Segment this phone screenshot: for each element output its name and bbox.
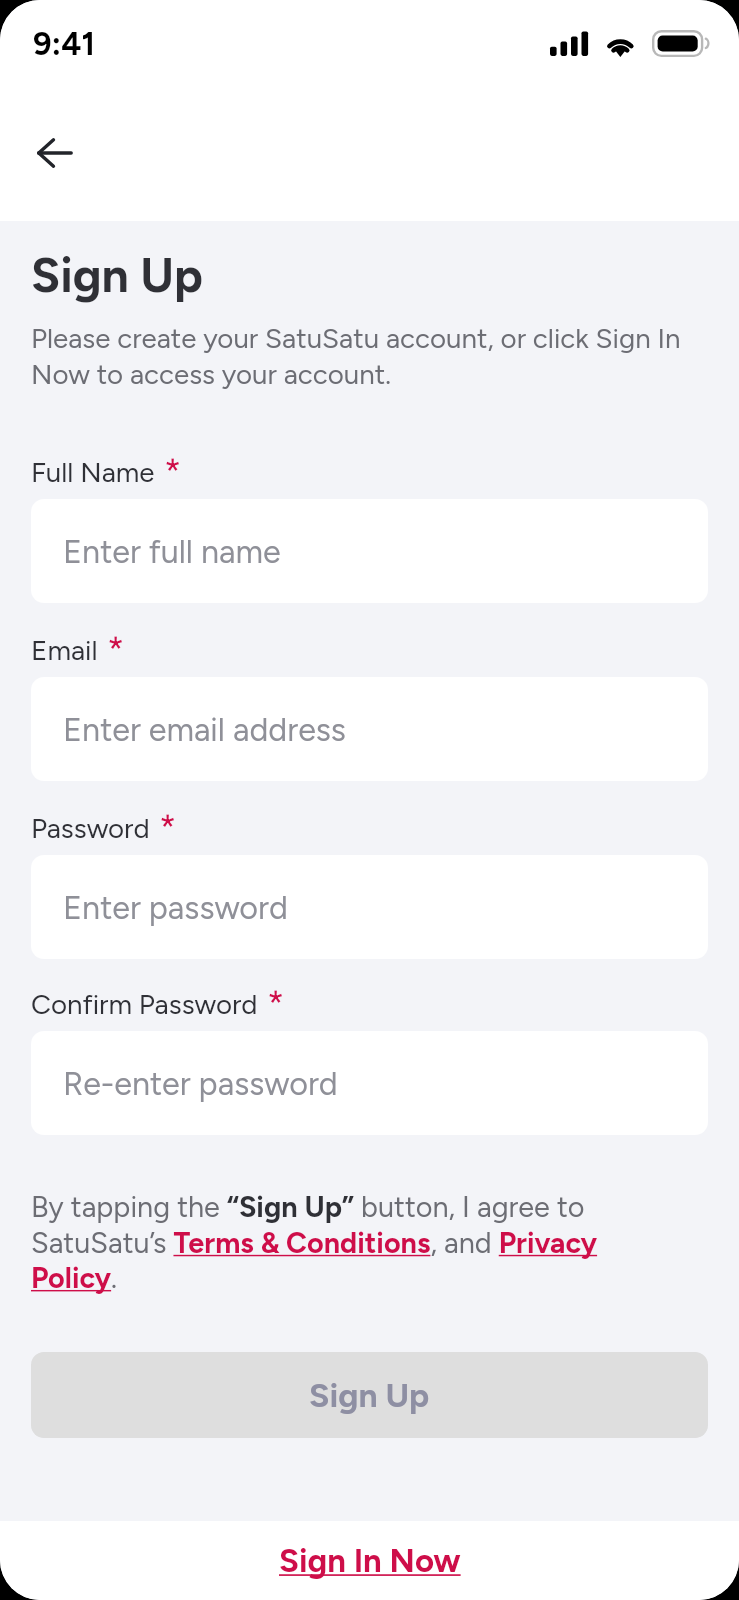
staticText: Full Name (31, 456, 155, 489)
staticText: By tapping the “Sign Up” button, I agree… (31, 1190, 661, 1295)
staticText: Sign Up (309, 1375, 430, 1415)
button[interactable]: Sign In Now (269, 1539, 471, 1582)
button[interactable]: Enter full name (31, 499, 708, 603)
staticText: * (107, 629, 125, 672)
button[interactable]: Back (27, 129, 83, 177)
staticText: * (164, 451, 182, 494)
staticText: Enter full name (63, 532, 281, 571)
staticText: Password (31, 812, 150, 845)
staticText: Email (31, 634, 98, 667)
staticText: Please create your SatuSatu account, or … (31, 322, 721, 391)
staticText: Confirm Password (31, 988, 258, 1021)
staticText: Re-enter password (63, 1064, 338, 1103)
button[interactable]: Re-enter password (31, 1031, 708, 1135)
staticText: * (267, 983, 285, 1026)
button[interactable]: Enter email address (31, 677, 708, 781)
staticText: Enter password (63, 888, 288, 927)
button[interactable]: Sign Up (31, 1352, 708, 1438)
button[interactable]: Enter password (31, 855, 708, 959)
staticText: Sign Up (31, 246, 203, 304)
staticText: Enter email address (63, 710, 346, 749)
staticText: Sign In Now (279, 1541, 461, 1580)
staticText: 9:41 (33, 25, 95, 63)
staticText: * (159, 807, 177, 850)
